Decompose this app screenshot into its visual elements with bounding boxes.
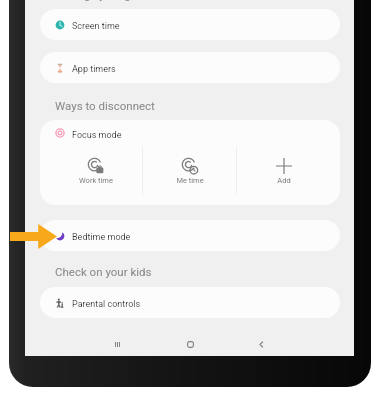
button[interactable]: Manage your goals <box>55 0 153 4</box>
button[interactable]: Work time <box>50 146 142 205</box>
button[interactable]: Focus mode <box>40 120 340 146</box>
button[interactable]: Home <box>178 332 202 356</box>
button[interactable]: Me time <box>143 146 236 205</box>
staticText: Me time <box>176 176 204 185</box>
staticText: Screen time <box>72 21 120 32</box>
staticText: Parental controls <box>72 299 141 310</box>
staticText: Check on your kids <box>55 265 152 278</box>
staticText: App timers <box>72 64 116 75</box>
button[interactable]: Check on your kids <box>55 261 152 281</box>
staticText: Bedtime mode <box>72 232 131 243</box>
button[interactable]: Bedtime mode <box>40 220 340 251</box>
button[interactable]: Recent apps <box>105 332 129 356</box>
button[interactable]: Add <box>237 146 330 205</box>
staticText: Manage your goals <box>55 0 153 1</box>
staticText: Ways to disconnect <box>55 99 155 112</box>
button[interactable]: Back <box>249 332 273 356</box>
staticText: Work time <box>79 176 113 185</box>
button[interactable]: Ways to disconnect <box>55 95 155 115</box>
button[interactable]: App timers <box>40 52 340 83</box>
button[interactable]: Parental controls <box>40 287 340 318</box>
button[interactable]: Screen time <box>40 9 340 40</box>
staticText: Focus mode <box>72 130 122 141</box>
staticText: Add <box>277 176 291 185</box>
